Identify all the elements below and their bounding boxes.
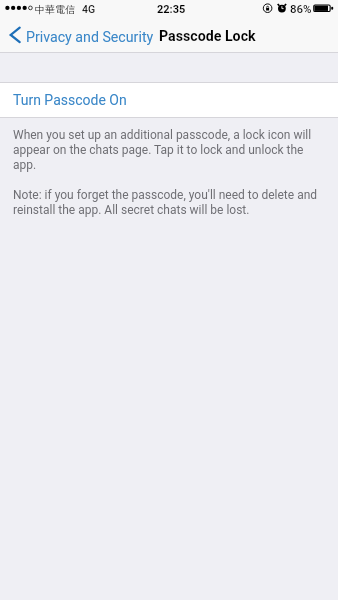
staticText: 中華電信 xyxy=(35,3,75,16)
staticText: 4G xyxy=(82,3,96,15)
staticText: Turn Passcode On xyxy=(13,92,127,108)
staticText: When you set up an additional passcode, … xyxy=(13,127,325,217)
staticText: 86% xyxy=(290,2,312,15)
staticText: 22:35 xyxy=(157,3,186,16)
button[interactable]: Back xyxy=(0,21,155,53)
staticText: Privacy and Security xyxy=(26,29,154,46)
staticText: Passcode Lock xyxy=(159,28,256,45)
other: Back xyxy=(0,21,26,53)
button[interactable]: Turn Passcode On xyxy=(0,82,338,118)
